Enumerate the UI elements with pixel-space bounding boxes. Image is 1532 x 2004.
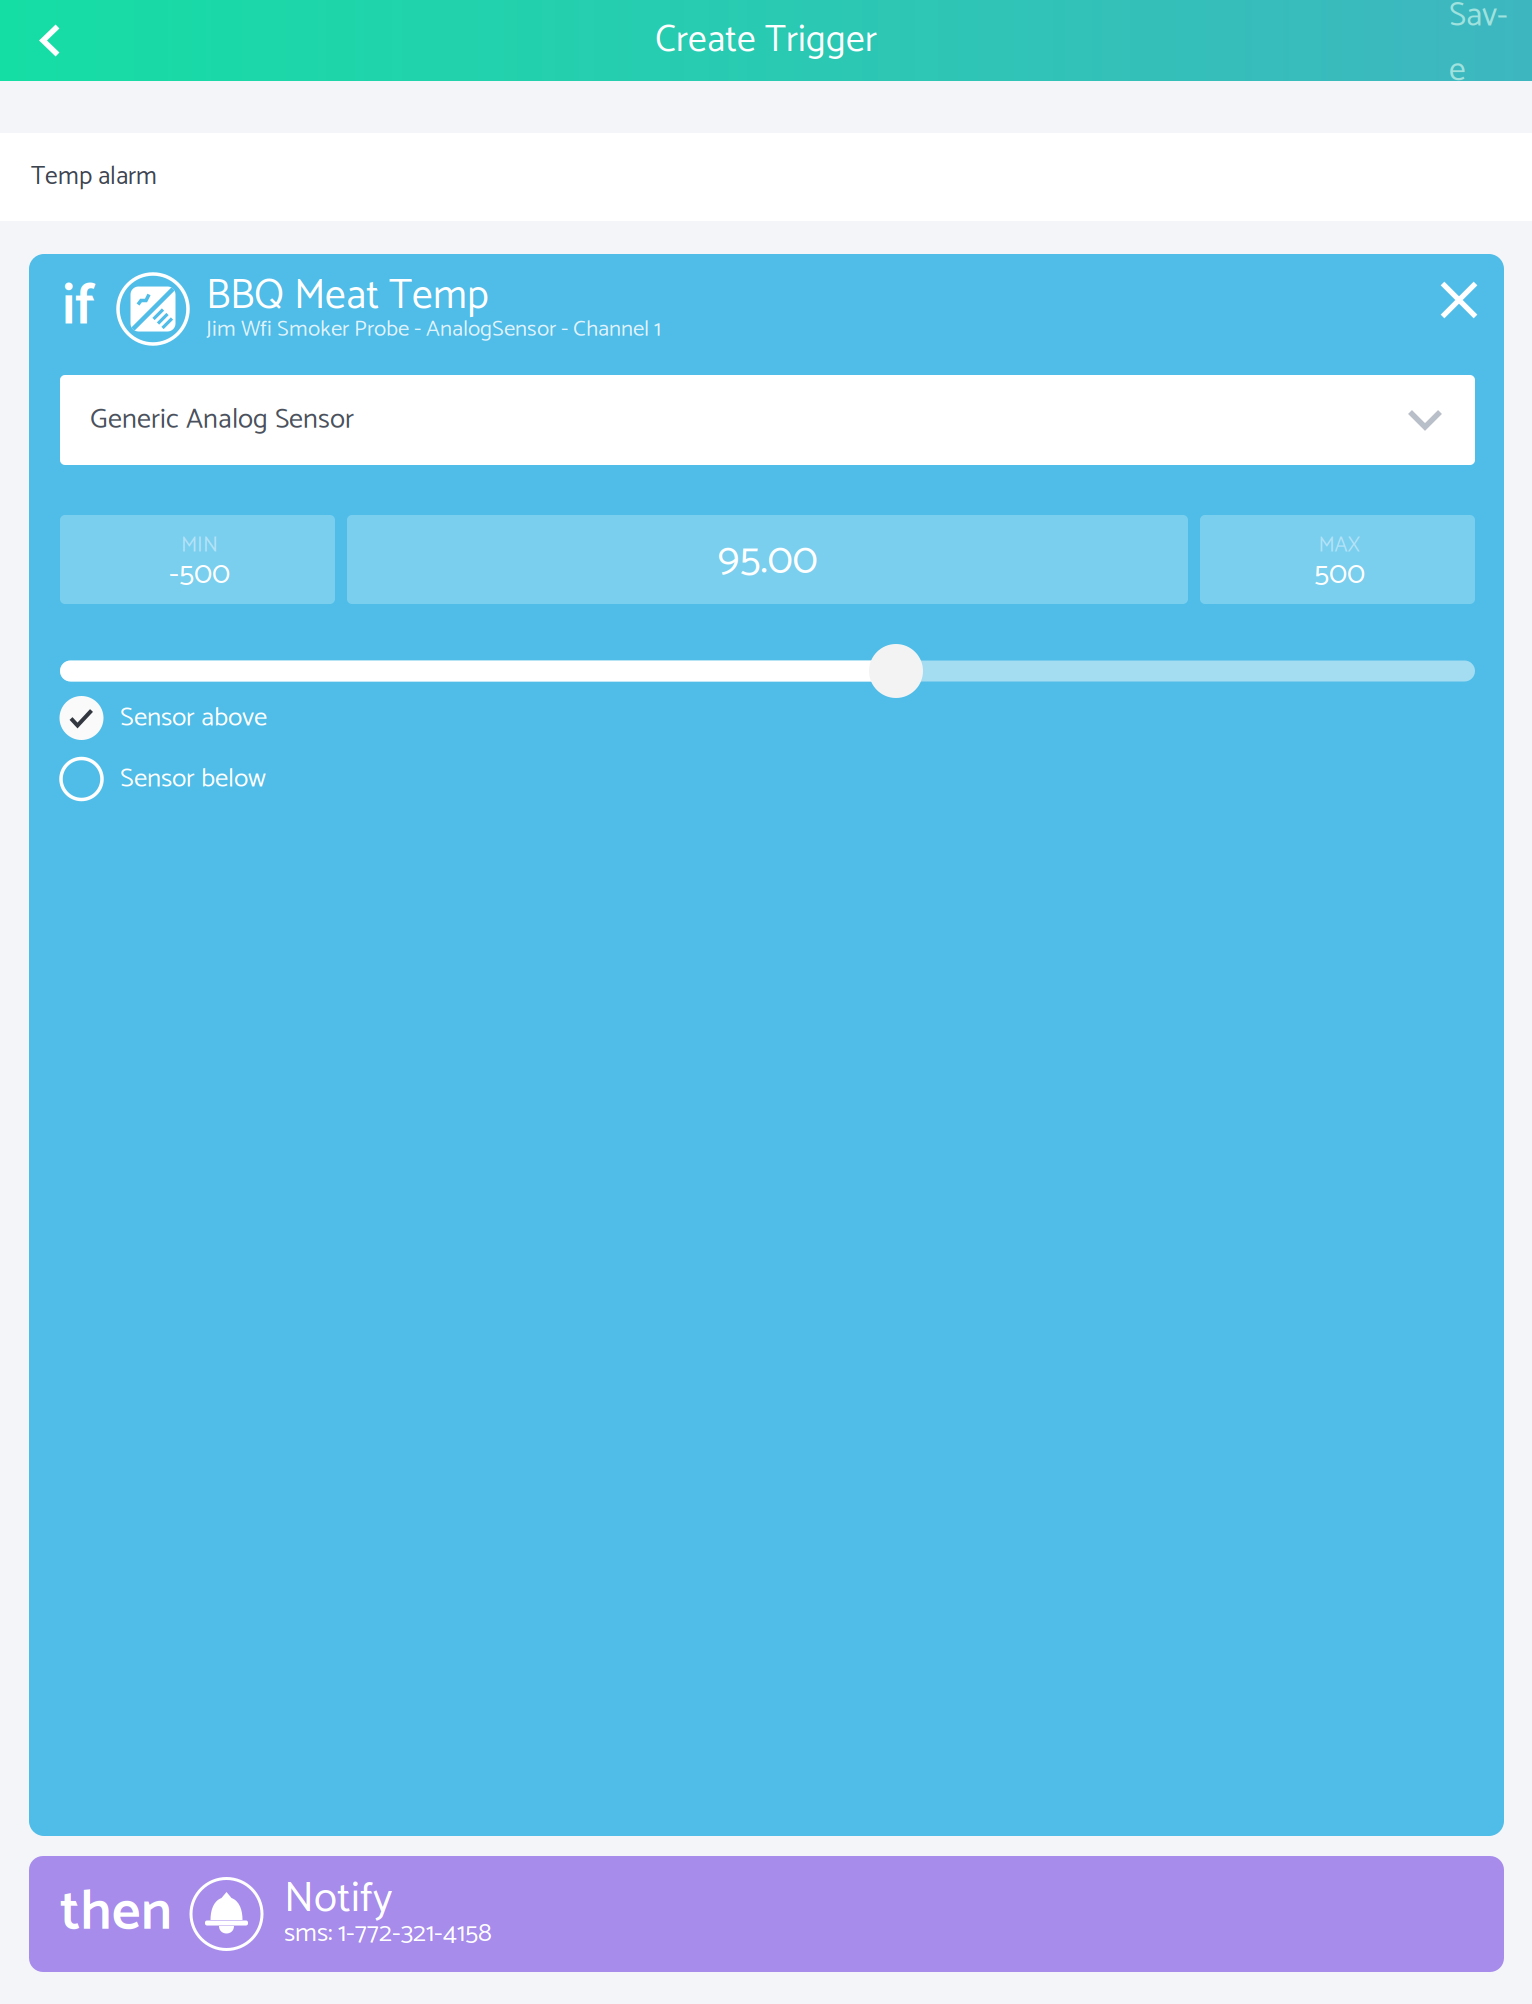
staticText: Generic Analog Sensor [90, 397, 354, 443]
button[interactable]: Save [1449, 0, 1532, 81]
staticText: 95.00 [717, 525, 817, 595]
button[interactable]: Temp alarm [0, 133, 1532, 221]
staticText: sms: 1-772-321-4158 [284, 1912, 492, 1955]
staticText: 500 [1314, 549, 1365, 600]
staticText: Sensor below [120, 757, 266, 801]
staticText: Sensor above [120, 696, 267, 740]
staticText: Create Trigger [655, 10, 877, 71]
button[interactable]: then [29, 1856, 1504, 1972]
staticText: Save [1449, 0, 1508, 98]
staticText: BBQ Meat Temp [206, 263, 489, 330]
staticText: MIN [181, 528, 218, 563]
button[interactable]: Remove trigger [1420, 261, 1498, 339]
staticText: MAX [1318, 528, 1360, 563]
button[interactable]: Sensor above [59, 692, 489, 744]
staticText: -500 [169, 549, 230, 600]
button[interactable]: Generic Analog Sensor [60, 375, 1475, 465]
button[interactable]: Sensor below [59, 753, 489, 805]
button[interactable]: Back [0, 0, 100, 81]
staticText: if [62, 259, 95, 355]
staticText: Notify [284, 1864, 392, 1934]
staticText: then [60, 1867, 172, 1959]
staticText: Jim Wfi Smoker Probe - AnalogSensor - Ch… [206, 311, 661, 348]
staticText: Temp alarm [31, 156, 157, 198]
